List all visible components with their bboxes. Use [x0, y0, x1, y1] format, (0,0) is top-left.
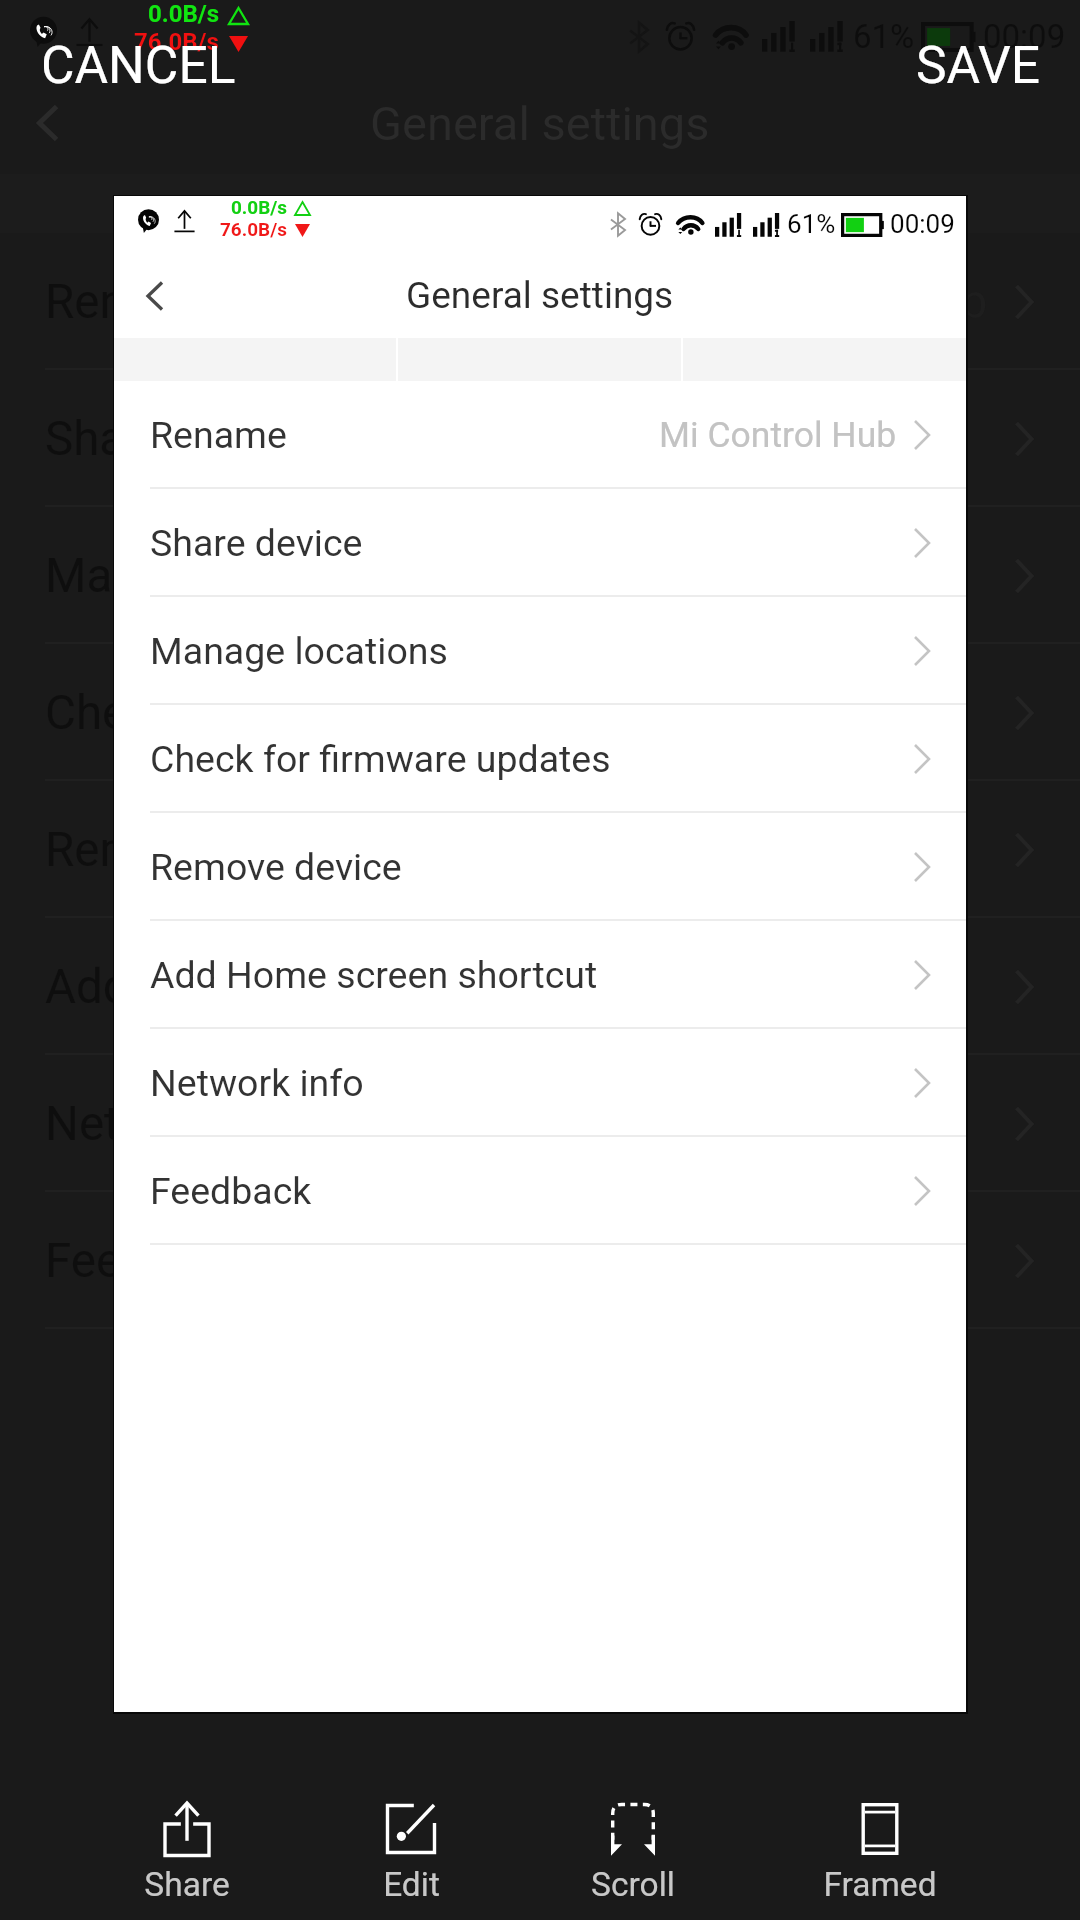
staticText: Rename: [150, 413, 287, 457]
staticText: Framed: [823, 1865, 937, 1904]
staticText: 0.0B/s: [148, 0, 220, 28]
staticText: Mi Control Hub: [659, 414, 897, 456]
button[interactable]: SAVE: [904, 27, 1053, 97]
staticText: 76.0B/s: [220, 218, 287, 240]
button[interactable]: Edit: [349, 1802, 473, 1916]
staticText: Scroll: [591, 1865, 675, 1904]
button[interactable]: Remove device: [114, 813, 966, 921]
staticText: Feedback: [45, 1233, 250, 1289]
staticText: Add Home screen shortcut: [45, 959, 612, 1015]
staticText: 0.0B/s: [231, 196, 288, 218]
staticText: Remove device: [150, 845, 402, 889]
staticText: Remove device: [45, 822, 364, 878]
staticText: Check for firmware updates: [45, 685, 629, 741]
staticText: Network info: [150, 1061, 364, 1105]
button[interactable]: Manage locations: [114, 597, 966, 705]
button[interactable]: Share device: [114, 489, 966, 597]
staticText: 00:09: [983, 17, 1066, 56]
staticText: CANCEL: [41, 35, 236, 89]
button[interactable]: Framed: [818, 1802, 942, 1916]
staticText: 00:09: [890, 209, 955, 240]
staticText: Rename: [45, 274, 219, 330]
button[interactable]: CANCEL: [29, 27, 248, 97]
button[interactable]: Scroll: [571, 1802, 695, 1916]
button[interactable]: Add Home screen shortcut: [114, 921, 966, 1029]
staticText: Feedback: [150, 1169, 312, 1213]
button[interactable]: Network info: [114, 1029, 966, 1137]
staticText: Manage locations: [45, 548, 423, 604]
staticText: General settings: [370, 96, 710, 151]
staticText: 61%: [853, 17, 915, 56]
button[interactable]: Share: [125, 1802, 249, 1916]
button[interactable]: Check for firmware updates: [114, 705, 966, 813]
staticText: Mi Control Hub: [670, 274, 988, 330]
staticText: Share: [144, 1865, 230, 1904]
staticText: SAVE: [916, 35, 1041, 89]
button[interactable]: Rename: [114, 381, 966, 489]
staticText: Network info: [45, 1096, 316, 1152]
staticText: Add Home screen shortcut: [150, 953, 598, 997]
staticText: Edit: [383, 1865, 440, 1904]
staticText: Share device: [45, 411, 315, 467]
staticText: 76.0B/s: [134, 28, 219, 56]
staticText: 61%: [787, 209, 836, 240]
staticText: General settings: [406, 274, 674, 317]
staticText: Manage locations: [150, 629, 448, 673]
button[interactable]: Feedback: [114, 1137, 966, 1245]
staticText: Check for firmware updates: [150, 737, 611, 781]
button[interactable]: Back: [132, 273, 178, 319]
staticText: Share device: [150, 521, 363, 565]
